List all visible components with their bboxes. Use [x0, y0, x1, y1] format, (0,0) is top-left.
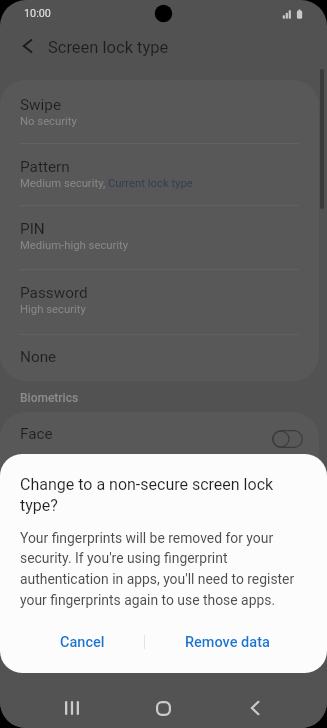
staticText: 10:00 — [24, 7, 51, 20]
staticText: Password — [20, 284, 88, 302]
staticText: High security — [20, 303, 86, 316]
button[interactable]: Remove data — [145, 622, 310, 662]
button[interactable]: Recent apps — [50, 692, 94, 724]
staticText: Remove data — [185, 634, 270, 651]
staticText: Medium security, Current lock type — [20, 177, 193, 190]
staticText: Screen lock type — [48, 38, 169, 57]
button[interactable]: Face — [0, 412, 319, 466]
staticText: Swipe — [20, 96, 61, 114]
staticText: Biometrics — [20, 391, 79, 405]
staticText: No security — [20, 115, 77, 128]
staticText: PIN — [20, 220, 45, 238]
button[interactable]: PIN — [0, 206, 319, 270]
button[interactable]: Cancel — [20, 622, 144, 662]
button[interactable]: None — [0, 335, 319, 381]
staticText: Pattern — [20, 158, 70, 176]
staticText: Change to a non-secure screen lock type? — [20, 475, 305, 515]
staticText: Your fingerprints will be removed for yo… — [20, 530, 305, 609]
button[interactable]: Navigate up — [7, 26, 47, 66]
button[interactable]: Pattern — [0, 144, 319, 206]
button[interactable]: Back — [233, 692, 277, 724]
staticText: None — [20, 348, 57, 366]
button[interactable]: Home — [141, 692, 185, 724]
staticText: Cancel — [60, 634, 105, 651]
staticText: Face — [20, 425, 53, 443]
staticText: Medium-high security — [20, 239, 129, 252]
button[interactable]: Swipe — [0, 80, 319, 144]
button[interactable]: Password — [0, 270, 319, 335]
